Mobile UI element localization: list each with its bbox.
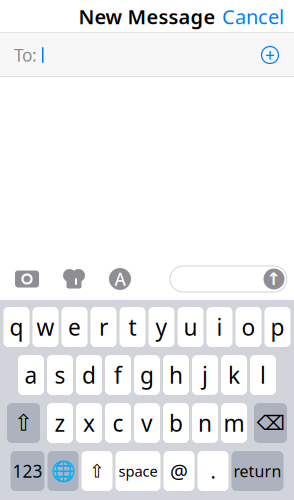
button[interactable]: b [163,403,189,443]
staticText: v [141,408,153,438]
button[interactable]: k [221,355,247,395]
staticText: p [270,312,284,342]
staticText: d [82,360,96,390]
button[interactable]: d [76,355,102,395]
staticText: j [202,360,208,390]
button[interactable]: a [18,355,44,395]
staticText: New Message [78,3,215,30]
button[interactable]: i [206,307,232,347]
staticText: n [198,408,212,438]
button[interactable]: Shift [7,403,40,443]
staticText: q [9,312,23,342]
staticText: w [36,312,54,342]
staticText: y [155,312,167,342]
button[interactable]: f [105,355,131,395]
staticText: x [83,408,95,438]
button[interactable]: x [76,403,102,443]
button[interactable]: g [134,355,160,395]
staticText: @ [170,458,188,484]
staticText: ⌫ [256,412,284,434]
staticText: a [24,360,37,390]
button[interactable]: Period [197,451,228,491]
staticText: 123 [12,459,42,482]
staticText: To: [14,43,37,66]
staticText: s [54,360,65,390]
button[interactable]: Add contact [255,40,285,70]
staticText: t [128,312,136,342]
button[interactable]: Next keyboard [47,451,78,491]
staticText: c [112,408,123,438]
button[interactable]: p [264,307,290,347]
button[interactable]: j [192,355,218,395]
staticText: u [183,312,197,342]
button[interactable]: r [90,307,116,347]
staticText: + [265,43,275,66]
staticText: i [216,312,222,342]
button[interactable]: c [105,403,131,443]
button[interactable]: y [148,307,174,347]
button[interactable]: Delete [254,403,287,443]
staticText: A [114,267,125,290]
button[interactable]: Cancel [212,0,294,36]
button[interactable]: Dictate [81,451,112,491]
button[interactable]: At sign [163,451,194,491]
staticText: z [54,408,65,438]
staticText: . [210,458,215,484]
button[interactable]: Return [231,451,283,491]
staticText: g [140,360,154,390]
staticText: r [99,312,108,342]
staticText: l [260,360,266,390]
button[interactable]: v [134,403,160,443]
button[interactable]: Space [115,451,160,491]
staticText: h [169,360,183,390]
button[interactable]: n [192,403,218,443]
button[interactable]: t [119,307,145,347]
staticText: Cancel [222,3,284,30]
staticText: e [68,312,81,342]
button[interactable]: Camera [14,267,40,291]
staticText: ⇧ [14,410,33,436]
staticText: k [228,360,240,390]
button[interactable]: m [221,403,247,443]
staticText: 🌐 [50,460,75,482]
button[interactable]: Send [263,268,284,289]
button[interactable]: w [32,307,58,347]
button[interactable]: e [61,307,87,347]
button[interactable]: App Store [108,267,132,291]
button[interactable]: s [47,355,73,395]
button[interactable]: h [163,355,189,395]
button[interactable]: q [3,307,29,347]
staticText: f [114,360,122,390]
staticText: b [169,408,183,438]
button[interactable]: u [177,307,203,347]
staticText: m [223,408,244,438]
button[interactable]: Digital Touch [62,267,86,291]
button[interactable]: Numbers [10,451,44,491]
button[interactable]: z [47,403,73,443]
staticText: return [233,460,281,482]
staticText: ⇧ [89,460,105,482]
button[interactable]: l [250,355,276,395]
staticText: ↑ [266,269,281,289]
staticText: space [118,461,157,481]
staticText: o [241,312,255,342]
button[interactable]: o [235,307,261,347]
